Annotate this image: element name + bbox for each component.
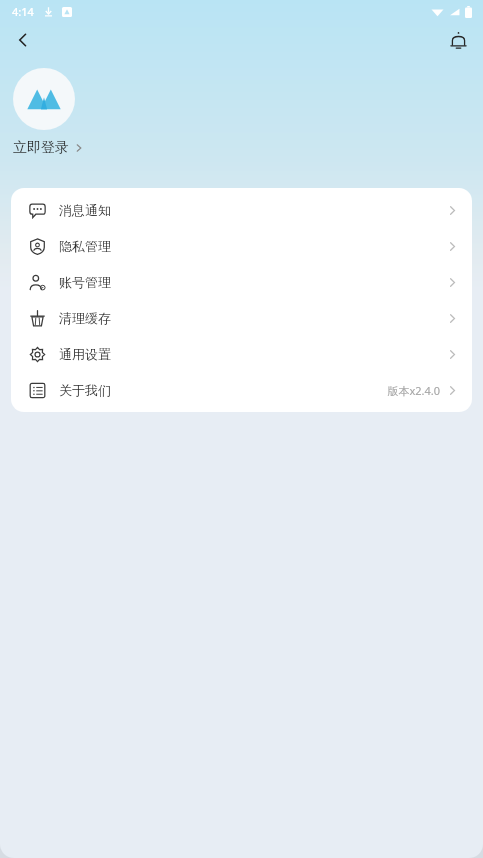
staticText: 版本x2.4.0 xyxy=(387,383,440,398)
staticText: 清理缓存 xyxy=(59,310,111,326)
staticText: 4:14 xyxy=(12,4,34,19)
staticText: 消息通知 xyxy=(59,202,111,218)
button[interactable]: 账号管理 xyxy=(11,264,472,300)
staticText: 账号管理 xyxy=(59,274,111,290)
staticText: 关于我们 xyxy=(59,382,111,398)
button[interactable]: 立即登录 xyxy=(13,137,90,159)
button[interactable]: 隐私管理 xyxy=(11,228,472,264)
staticText: 通用设置 xyxy=(59,346,111,362)
button[interactable]: 消息通知 xyxy=(11,192,472,228)
button[interactable]: Avatar xyxy=(13,68,75,130)
button[interactable]: 清理缓存 xyxy=(11,300,472,336)
staticText: 立即登录 xyxy=(13,139,69,157)
button[interactable]: Back xyxy=(6,23,40,57)
button[interactable]: 通用设置 xyxy=(11,336,472,372)
button[interactable]: 关于我们 xyxy=(11,372,472,408)
staticText: 隐私管理 xyxy=(59,238,111,254)
button[interactable]: Notifications xyxy=(441,23,475,57)
